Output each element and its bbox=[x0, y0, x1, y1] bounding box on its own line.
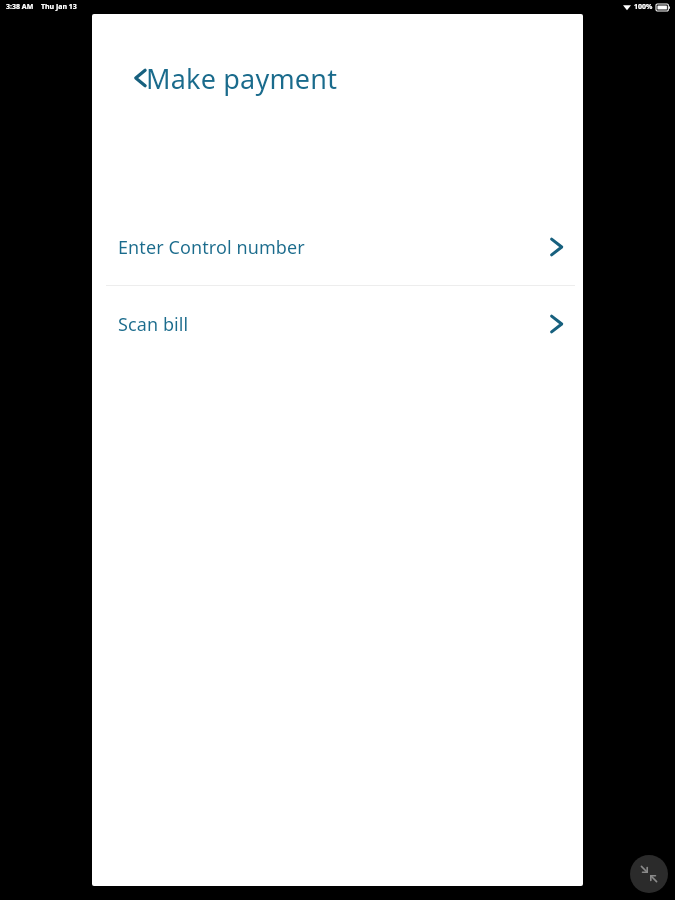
button[interactable]: Shrink window bbox=[630, 855, 668, 893]
staticText: 100% bbox=[634, 2, 653, 12]
staticText: Make payment bbox=[146, 60, 338, 97]
staticText: Scan bill bbox=[118, 312, 189, 337]
button[interactable]: Scan bill bbox=[92, 286, 583, 362]
button[interactable]: Back bbox=[122, 58, 162, 98]
button[interactable]: Enter Control number bbox=[92, 209, 583, 285]
staticText: Enter Control number bbox=[118, 235, 305, 260]
staticText: Thu Jan 13 bbox=[41, 2, 77, 12]
staticText: 3:38 AM bbox=[6, 2, 34, 12]
